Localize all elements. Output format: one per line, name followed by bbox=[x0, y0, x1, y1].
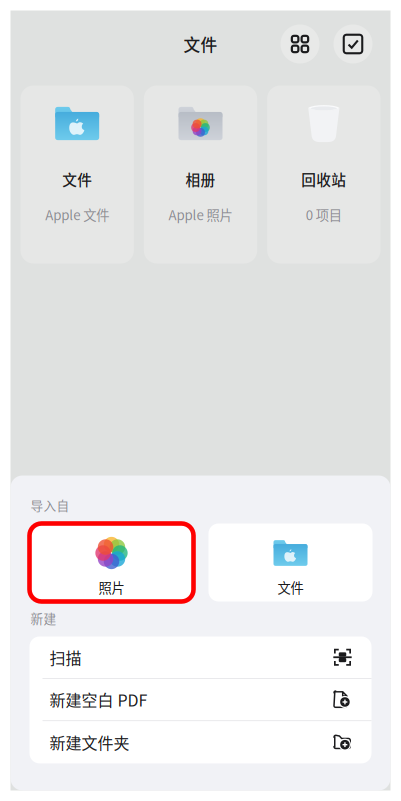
button[interactable]: 相册 bbox=[144, 85, 257, 263]
staticText: 文件 bbox=[183, 32, 217, 56]
staticText: 导入自 bbox=[30, 496, 69, 514]
button[interactable]: 回收站 bbox=[267, 85, 380, 263]
staticText: 扫描 bbox=[49, 646, 81, 669]
staticText: 照片 bbox=[98, 577, 124, 597]
staticText: 回收站 bbox=[301, 168, 346, 190]
button[interactable]: 扫描 bbox=[29, 636, 371, 678]
staticText: Apple 照片 bbox=[168, 205, 232, 224]
staticText: 相册 bbox=[185, 168, 215, 190]
staticText: 新建空白 PDF bbox=[49, 688, 147, 711]
button[interactable]: 新建空白 PDF bbox=[29, 679, 371, 720]
staticText: 新建文件夹 bbox=[49, 731, 129, 754]
button[interactable]: Grid view bbox=[280, 24, 319, 63]
staticText: 文件 bbox=[277, 577, 303, 597]
button[interactable]: 文件 bbox=[208, 523, 372, 601]
staticText: 0 项目 bbox=[306, 205, 342, 224]
button[interactable]: 文件 bbox=[20, 85, 134, 263]
button[interactable]: 新建文件夹 bbox=[29, 721, 371, 763]
staticText: 新建 bbox=[30, 609, 56, 627]
staticText: 文件 bbox=[62, 168, 92, 190]
staticText: Apple 文件 bbox=[45, 205, 109, 224]
button[interactable]: Select items bbox=[333, 24, 372, 63]
button[interactable]: 照片 bbox=[29, 523, 193, 601]
